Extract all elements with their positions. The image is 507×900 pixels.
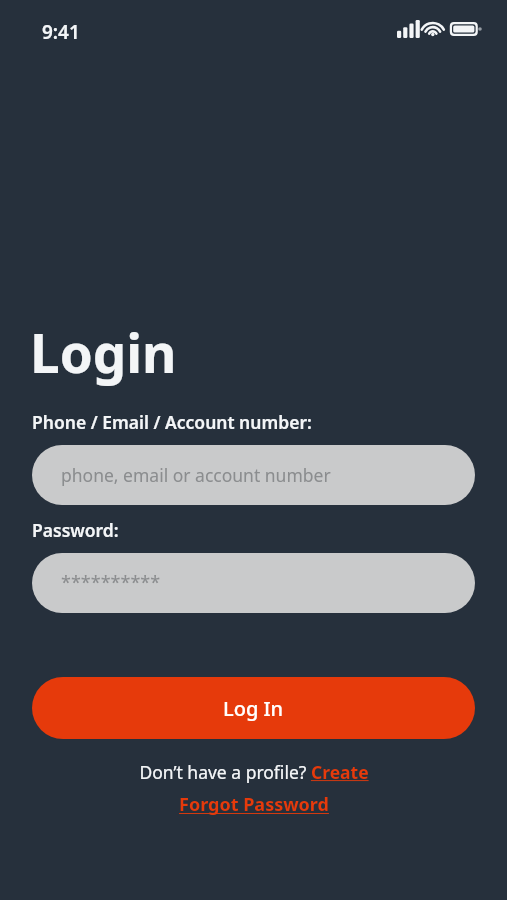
staticText: Log In [223, 695, 284, 722]
staticText: ********** [61, 570, 161, 595]
button[interactable]: phone, email or account number [32, 445, 475, 505]
staticText: Forgot Password [179, 792, 329, 817]
staticText: 9:41 [42, 19, 80, 45]
button[interactable]: ********** [32, 553, 475, 613]
staticText: phone, email or account number [61, 463, 331, 487]
staticText: Phone / Email / Account number: [32, 410, 312, 434]
button[interactable]: Forgot Password [179, 792, 329, 817]
staticText: Password: [32, 518, 119, 542]
button[interactable]: Log In [32, 677, 475, 739]
staticText: Don’t have a profile? Create [139, 760, 369, 784]
staticText: Login [30, 316, 177, 388]
button[interactable]: Don’t have a profile? Create [139, 760, 369, 784]
